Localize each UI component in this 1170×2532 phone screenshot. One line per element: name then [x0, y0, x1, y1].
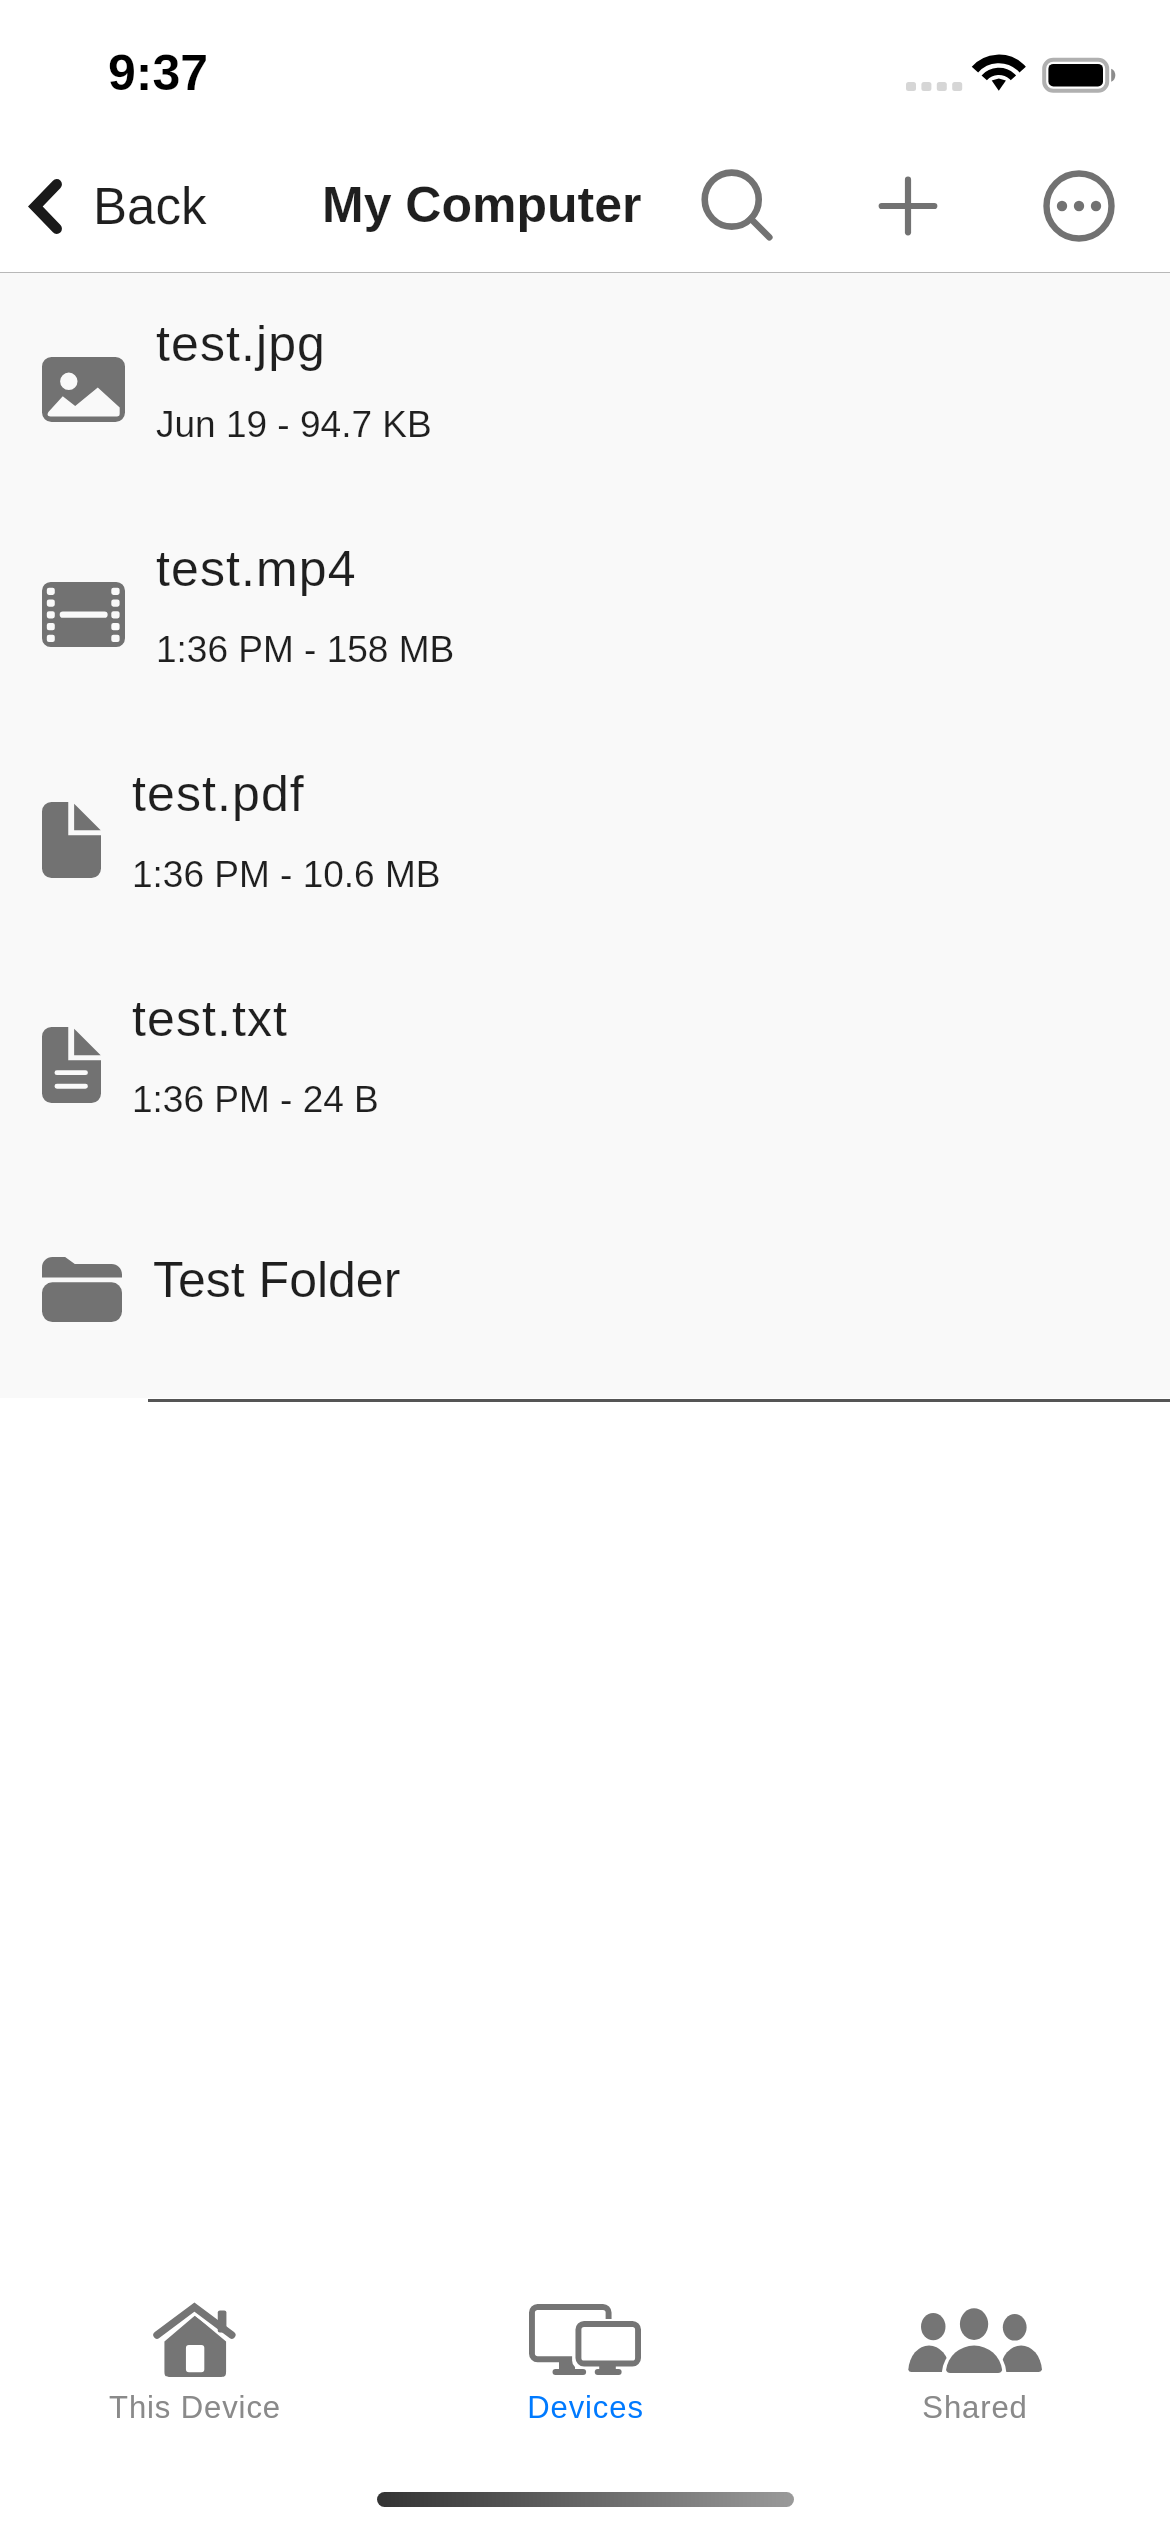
staticText: 1:36 PM - 24 B: [132, 1079, 379, 1120]
staticText: test.jpg: [156, 316, 327, 372]
button[interactable]: Test Folder: [0, 1177, 1170, 1402]
staticText: Devices: [527, 2390, 644, 2425]
staticText: test.txt: [132, 991, 289, 1047]
button[interactable]: test.pdf: [0, 727, 1170, 952]
button[interactable]: Shared: [780, 2295, 1170, 2435]
button[interactable]: Devices: [390, 2295, 780, 2435]
staticText: This Device: [109, 2390, 281, 2425]
button[interactable]: Search: [686, 155, 778, 247]
staticText: My Computer: [322, 177, 642, 233]
button[interactable]: This Device: [0, 2295, 390, 2435]
button[interactable]: Back: [0, 145, 223, 267]
staticText: test.mp4: [156, 541, 357, 597]
staticText: test.pdf: [132, 766, 305, 822]
staticText: Jun 19 - 94.7 KB: [156, 404, 432, 445]
staticText: 9:37: [108, 45, 209, 101]
button[interactable]: test.jpg: [0, 277, 1170, 502]
staticText: Test Folder: [153, 1252, 401, 1308]
staticText: Shared: [922, 2390, 1028, 2425]
button[interactable]: test.txt: [0, 952, 1170, 1177]
staticText: Back: [93, 178, 207, 235]
staticText: 1:36 PM - 10.6 MB: [132, 854, 441, 895]
staticText: 1:36 PM - 158 MB: [156, 629, 455, 670]
button[interactable]: test.mp4: [0, 502, 1170, 727]
button[interactable]: More options: [1033, 160, 1125, 252]
button[interactable]: Add: [862, 160, 954, 252]
